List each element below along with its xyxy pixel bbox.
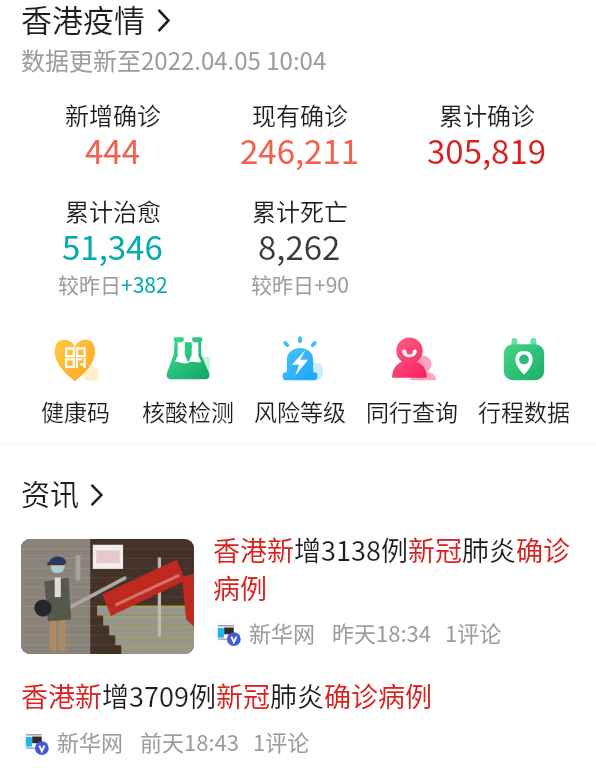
button[interactable]: 健康码 bbox=[19, 332, 132, 427]
staticText: 1评论 bbox=[253, 725, 310, 757]
button[interactable]: 累计确诊 bbox=[393, 97, 580, 180]
staticText: 较昨日+382 bbox=[58, 269, 168, 299]
button[interactable]: 同行查询 bbox=[356, 332, 468, 427]
staticText: 香港疫情 bbox=[21, 0, 145, 41]
staticText: 累计确诊 bbox=[439, 97, 535, 132]
other: 风险等级 bbox=[272, 332, 328, 388]
button[interactable]: 核酸检测 bbox=[132, 332, 244, 427]
staticText: 246,211 bbox=[240, 126, 360, 174]
button[interactable]: 新华网 bbox=[213, 616, 502, 648]
button[interactable]: 累计死亡 bbox=[206, 193, 393, 306]
button[interactable]: 香港疫情 bbox=[21, 0, 170, 41]
staticText: 资讯 bbox=[21, 472, 80, 514]
button[interactable]: 香港新增3138例新冠肺炎确诊病例 bbox=[213, 530, 575, 606]
button[interactable] bbox=[21, 539, 194, 654]
button[interactable]: 现有确诊 bbox=[206, 97, 393, 180]
staticText: 风险等级 bbox=[254, 394, 346, 427]
button[interactable]: 行程数据 bbox=[468, 332, 580, 427]
staticText: 昨天18:34 bbox=[332, 616, 431, 648]
staticText: 新华网 bbox=[249, 616, 316, 648]
other: 核酸检测 bbox=[160, 332, 216, 388]
button[interactable]: 新华网 bbox=[21, 725, 310, 757]
staticText: 现有确诊 bbox=[252, 97, 348, 132]
button[interactable]: 累计治愈 bbox=[19, 193, 206, 306]
staticText: 数据更新至2022.04.05 10:04 bbox=[21, 42, 327, 77]
staticText: 前天18:43 bbox=[140, 725, 239, 757]
button[interactable]: 风险等级 bbox=[244, 332, 356, 427]
staticText: 健康码 bbox=[41, 394, 110, 427]
staticText: 新华网 bbox=[57, 725, 124, 757]
staticText: 51,346 bbox=[62, 222, 163, 270]
staticText: 新增确诊 bbox=[65, 97, 161, 132]
button[interactable]: 资讯 bbox=[21, 472, 103, 514]
staticText: 305,819 bbox=[427, 126, 547, 174]
staticText: 8,262 bbox=[258, 222, 341, 270]
staticText: 较昨日+90 bbox=[251, 269, 349, 299]
other: 健康码 bbox=[48, 332, 104, 388]
staticText: 累计死亡 bbox=[252, 193, 348, 228]
staticText: 核酸检测 bbox=[142, 394, 234, 427]
staticText: 同行查询 bbox=[366, 394, 458, 427]
button[interactable]: 香港新增3709例新冠肺炎确诊病例 bbox=[21, 676, 575, 715]
staticText: 行程数据 bbox=[478, 394, 570, 427]
staticText: 1评论 bbox=[445, 616, 502, 648]
other: 行程数据 bbox=[496, 332, 552, 388]
other: 同行查询 bbox=[384, 332, 440, 388]
staticText: 444 bbox=[85, 126, 140, 174]
staticText: 累计治愈 bbox=[65, 193, 161, 228]
button[interactable]: 新增确诊 bbox=[19, 97, 206, 180]
